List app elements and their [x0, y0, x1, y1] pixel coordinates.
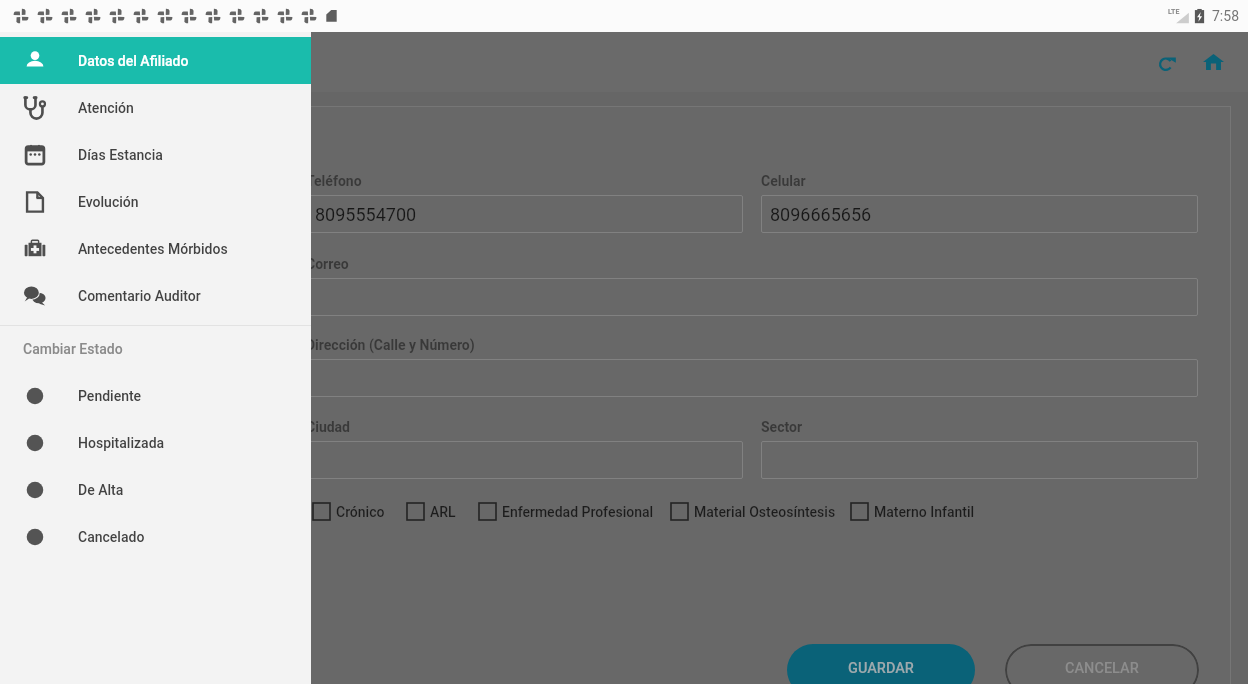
button[interactable]: Materno Infantil	[851, 503, 1001, 520]
button[interactable]: Crónico	[313, 503, 407, 520]
staticText: Antecedentes Mórbidos	[78, 241, 228, 257]
staticText: Materno Infantil	[874, 504, 975, 520]
staticText: Teléfono	[306, 173, 362, 189]
button[interactable]: Evolución	[0, 178, 311, 225]
button[interactable]: De Alta	[0, 466, 311, 513]
button[interactable]: Home	[1191, 40, 1235, 84]
staticText: GUARDAR	[848, 660, 914, 677]
staticText: Cancelado	[78, 529, 145, 545]
staticText: CANCELAR	[1065, 660, 1139, 677]
staticText: LTE	[1168, 8, 1180, 16]
staticText: Sector	[761, 419, 803, 435]
staticText: De Alta	[78, 482, 124, 498]
button[interactable]: Hospitalizada	[0, 419, 311, 466]
staticText: Crónico	[336, 504, 385, 520]
staticText: Comentario Auditor	[78, 288, 201, 304]
button[interactable]: Pendiente	[0, 372, 311, 419]
button[interactable]: GUARDAR	[787, 644, 975, 684]
staticText: Atención	[78, 100, 134, 116]
staticText: Evolución	[78, 194, 139, 210]
button[interactable]: Atención	[0, 84, 311, 131]
button[interactable]: Comentario Auditor	[0, 272, 311, 319]
staticText: Dirección (Calle y Número)	[306, 337, 475, 353]
button[interactable]: Datos del Afiliado	[0, 37, 311, 84]
button[interactable]: Días Estancia	[0, 131, 311, 178]
staticText: 7:58	[1212, 8, 1239, 24]
staticText: Enfermedad Profesional	[502, 504, 654, 520]
button[interactable]: Enfermedad Profesional	[479, 503, 671, 520]
staticText: Correo	[306, 256, 349, 272]
button[interactable]: CANCELAR	[1005, 644, 1199, 684]
staticText: 8096665656	[770, 204, 872, 225]
staticText: Cambiar Estado	[23, 341, 123, 357]
staticText: Ciudad	[306, 419, 351, 435]
staticText: 8095554700	[315, 204, 417, 225]
staticText: Hospitalizada	[78, 435, 165, 451]
button[interactable]: Material Osteosíntesis	[671, 503, 851, 520]
button[interactable]: Cancelado	[0, 513, 311, 560]
staticText: Pendiente	[78, 388, 142, 404]
staticText: Días Estancia	[78, 147, 163, 163]
staticText: Celular	[761, 173, 806, 189]
button[interactable]: Refresh	[1145, 40, 1189, 84]
staticText: Datos del Afiliado	[78, 53, 189, 69]
staticText: ARL	[430, 504, 456, 520]
button[interactable]: Antecedentes Mórbidos	[0, 225, 311, 272]
button[interactable]: ARL	[407, 503, 479, 520]
staticText: Material Osteosíntesis	[694, 504, 836, 520]
